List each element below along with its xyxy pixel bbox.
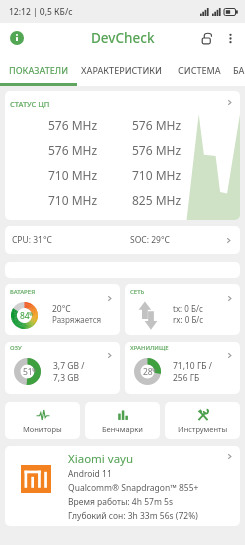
- staticText: 3,7 GB /: [53, 360, 85, 372]
- staticText: %: [152, 367, 157, 374]
- staticText: Бенчмарки: [102, 424, 143, 434]
- staticText: 710 MHz: [48, 167, 98, 183]
- button[interactable]: БАТАРЕЯ: [5, 284, 120, 335]
- staticText: 576 MHz: [132, 117, 182, 133]
- staticText: 51: [23, 366, 33, 378]
- staticText: SOC: 29°C: [130, 234, 170, 246]
- staticText: 71,10 ГБ /: [173, 360, 212, 372]
- staticText: 710 MHz: [48, 192, 98, 208]
- staticText: %: [32, 367, 37, 374]
- button[interactable]: Unlock: [194, 26, 218, 50]
- staticText: DevCheck: [91, 29, 155, 47]
- staticText: ОЗУ: [10, 344, 22, 352]
- staticText: 825 MHz: [132, 192, 182, 208]
- staticText: ПОКАЗАТЕЛИ: [9, 64, 69, 76]
- staticText: СИСТЕМА: [178, 64, 221, 76]
- staticText: 20°C: [52, 303, 71, 315]
- staticText: 12:12 | 0,5 КБ/с: [9, 6, 73, 18]
- staticText: 576 MHz: [48, 142, 98, 158]
- staticText: 28: [143, 366, 153, 378]
- staticText: Xiaomi vayu: [68, 451, 134, 467]
- button[interactable]: СТАТУС ЦП: [5, 91, 240, 220]
- staticText: 576 MHz: [132, 142, 182, 158]
- staticText: 7,3 GB: [53, 372, 79, 384]
- staticText: Android 11: [68, 468, 112, 480]
- button[interactable]: Мониторы: [5, 402, 80, 439]
- staticText: Инструменты: [178, 424, 228, 434]
- staticText: ХАРАКТЕРИСТИКИ: [81, 64, 162, 76]
- staticText: ХРАНИЛИЩЕ: [130, 344, 169, 352]
- staticText: СТАТУС ЦП: [10, 99, 50, 109]
- staticText: БАТ: [233, 64, 245, 76]
- staticText: 710 MHz: [132, 167, 182, 183]
- button[interactable]: СИСТЕМА: [165, 53, 233, 86]
- button[interactable]: СЕТЬ: [125, 284, 240, 335]
- staticText: 256 ГБ: [173, 372, 200, 384]
- button[interactable]: ХАРАКТЕРИСТИКИ: [77, 53, 165, 86]
- staticText: СЕТЬ: [130, 288, 145, 296]
- button[interactable]: Бенчмарки: [85, 402, 160, 439]
- staticText: Разряжается: [52, 314, 102, 325]
- button[interactable]: More options: [218, 26, 242, 50]
- staticText: rx: 0 Б/с: [173, 314, 204, 325]
- button[interactable]: ОЗУ: [5, 342, 120, 394]
- staticText: Мониторы: [23, 424, 62, 434]
- button[interactable]: About: [6, 27, 28, 49]
- button[interactable]: CPU: 31°C: [5, 226, 240, 254]
- button[interactable]: Инструменты: [165, 402, 240, 439]
- staticText: Qualcomm® Snapdragon™ 855+: [68, 482, 199, 494]
- staticText: %: [29, 311, 34, 318]
- staticText: Глубокий сон: 3h 33m 56s (72%): [68, 510, 198, 522]
- button[interactable]: Xiaomi vayu: [5, 446, 240, 526]
- staticText: CPU: 31°C: [12, 234, 52, 246]
- staticText: БАТАРЕЯ: [10, 288, 36, 296]
- button[interactable]: ПОКАЗАТЕЛИ: [0, 53, 77, 86]
- staticText: 84: [20, 310, 30, 322]
- button[interactable]: ХРАНИЛИЩЕ: [125, 342, 240, 394]
- button[interactable]: БАТ: [233, 53, 245, 86]
- staticText: 576 MHz: [48, 117, 98, 133]
- staticText: Время работы: 4h 57m 5s: [68, 496, 173, 508]
- staticText: tx: 0 Б/с: [173, 303, 203, 314]
